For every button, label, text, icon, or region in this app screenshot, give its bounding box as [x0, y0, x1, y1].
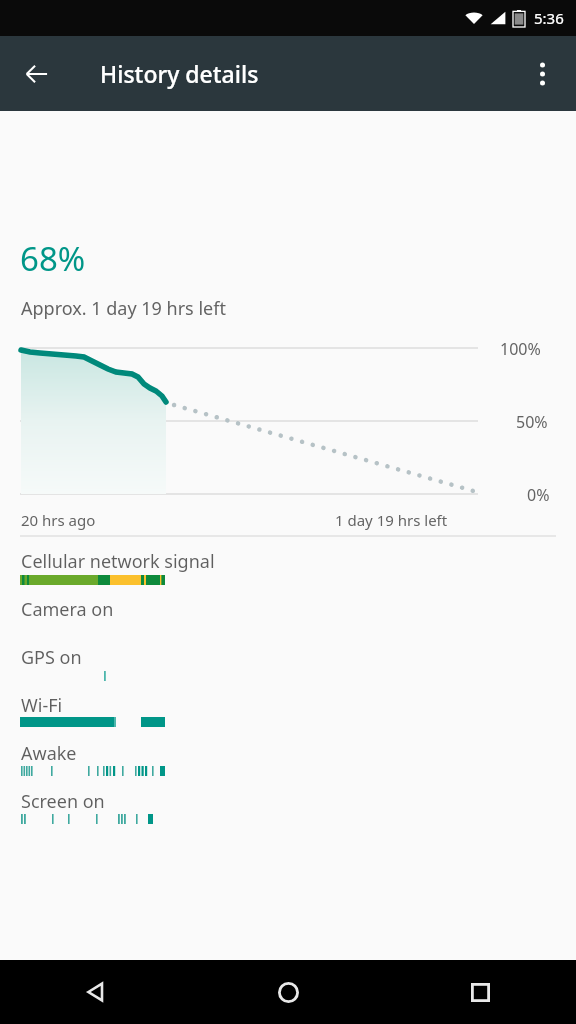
button[interactable]: Awake	[0, 741, 576, 783]
button[interactable]: Wi-Fi	[0, 693, 576, 735]
staticText: 68%	[20, 236, 86, 281]
staticText: Awake	[21, 741, 77, 766]
button[interactable]: Back	[8, 45, 66, 103]
staticText: 100%	[500, 338, 541, 360]
staticText: 50%	[516, 411, 548, 433]
staticText: 20 hrs ago	[21, 510, 96, 530]
button[interactable]: More options	[516, 48, 568, 100]
staticText: 0%	[527, 484, 550, 506]
button[interactable]: GPS on	[0, 645, 576, 687]
staticText: Screen on	[21, 789, 105, 814]
button[interactable]: Back	[0, 960, 192, 1024]
staticText: Cellular network signal	[21, 549, 215, 574]
button[interactable]: Home	[192, 960, 384, 1024]
staticText: Approx. 1 day 19 hrs left	[21, 296, 226, 321]
staticText: 1 day 19 hrs left	[335, 510, 448, 530]
button[interactable]: Camera on	[0, 597, 576, 639]
button[interactable]: Screen on	[0, 789, 576, 831]
staticText: GPS on	[21, 645, 82, 670]
staticText: History details	[100, 58, 259, 89]
button[interactable]: Cellular network signal	[0, 549, 576, 591]
staticText: Wi-Fi	[21, 693, 63, 718]
staticText: 5:36	[534, 8, 564, 28]
staticText: Camera on	[21, 597, 114, 622]
button[interactable]: Recent apps	[384, 960, 576, 1024]
